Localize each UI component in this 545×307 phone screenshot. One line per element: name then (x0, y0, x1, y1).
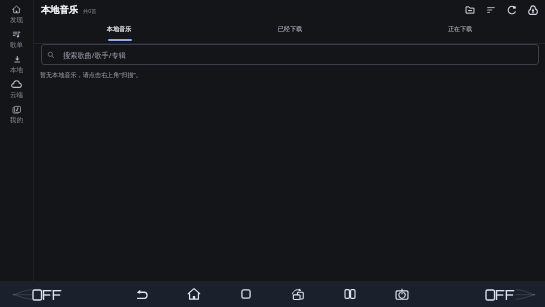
button[interactable]: 本地音乐 (34, 20, 205, 43)
button[interactable]: 云端 (0, 79, 33, 104)
button[interactable]: Home (180, 281, 207, 307)
button[interactable]: Rotate screen (284, 281, 311, 307)
button[interactable]: Back (128, 281, 155, 307)
staticText: 本地音乐 (41, 4, 78, 16)
button[interactable]: Folder (460, 0, 480, 20)
button[interactable]: Recents (232, 281, 259, 307)
button[interactable]: Upload to cloud (523, 0, 543, 20)
staticText: 本地音乐 (107, 25, 132, 33)
button[interactable]: Split screen (336, 281, 363, 307)
staticText: 暂无本地音乐，请点击右上角“扫描”。 (40, 70, 142, 78)
staticText: 发现 (10, 16, 23, 24)
staticText: 已经下载 (278, 25, 303, 33)
staticText: 本地 (10, 66, 23, 74)
button[interactable]: Refresh (502, 0, 522, 20)
staticText: 正在下载 (448, 25, 473, 33)
staticText: 云端 (10, 91, 23, 99)
button[interactable]: 已经下载 (205, 20, 375, 43)
button[interactable]: 歌单 (0, 29, 33, 54)
button[interactable]: 正在下载 (375, 20, 545, 43)
button[interactable]: Sort (481, 0, 501, 20)
button[interactable]: Right soft key off (486, 289, 533, 300)
staticText: 搜索歌曲/歌手/专辑 (63, 50, 126, 60)
button[interactable]: 发现 (0, 4, 33, 29)
staticText: 我的 (10, 116, 23, 124)
button[interactable]: 我的 (0, 104, 33, 129)
button[interactable]: 搜索歌曲/歌手/专辑 (41, 44, 539, 65)
staticText: 共0首 (83, 7, 97, 14)
button[interactable]: Left soft key off (15, 289, 62, 300)
button[interactable]: 本地 (0, 54, 33, 79)
button[interactable]: Power (388, 281, 415, 307)
staticText: 歌单 (10, 41, 23, 49)
